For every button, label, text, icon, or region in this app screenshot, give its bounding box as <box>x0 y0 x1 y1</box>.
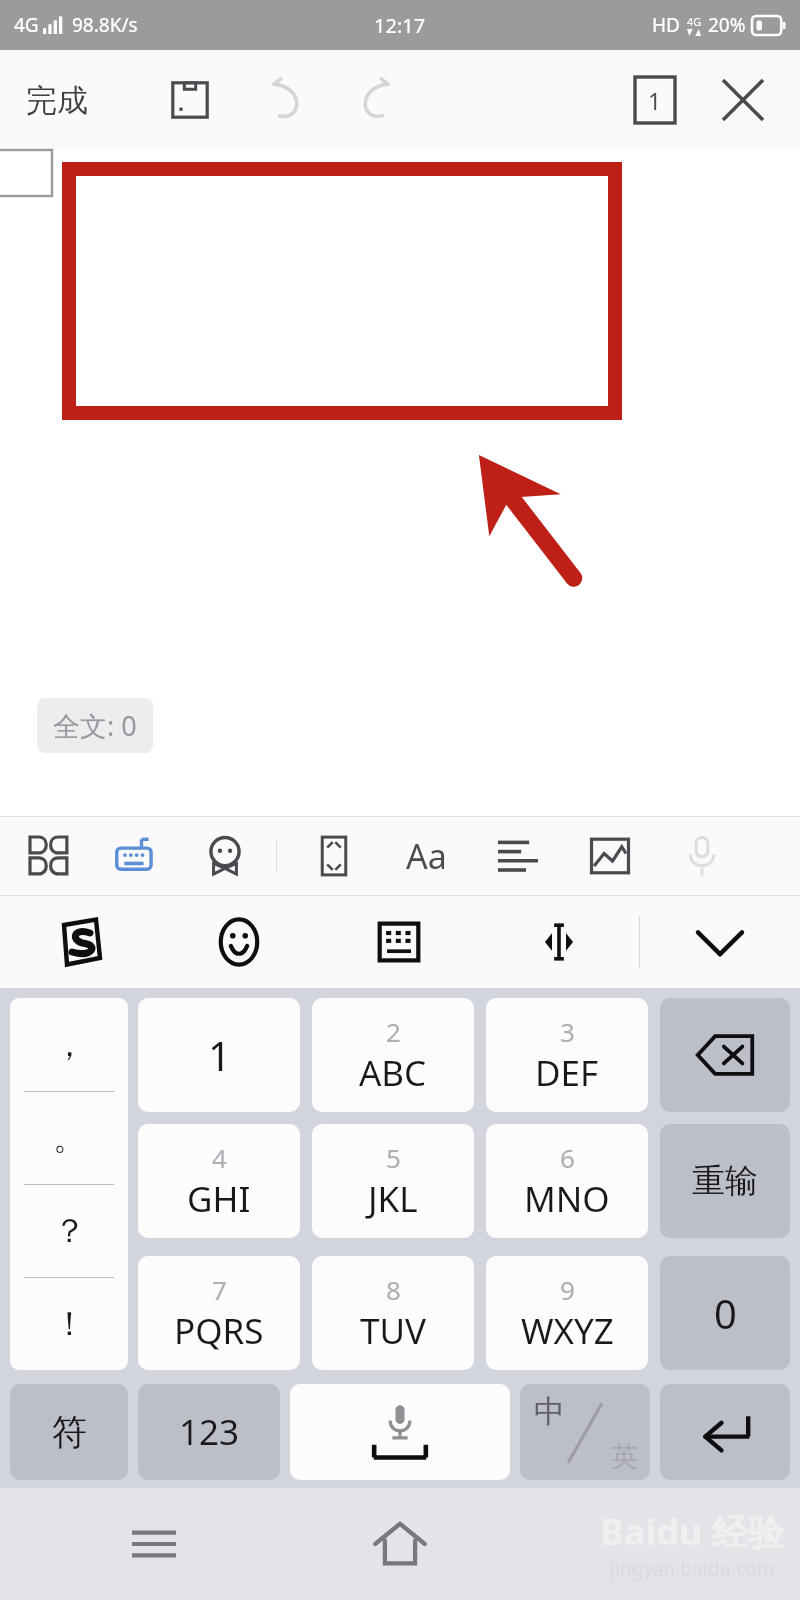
staticText: 符 <box>52 1410 87 1454</box>
button[interactable]: Backspace <box>660 998 790 1112</box>
button[interactable]: Home <box>359 1503 441 1585</box>
staticText: 3 <box>560 1014 575 1049</box>
button[interactable]: 1 <box>138 998 300 1112</box>
button[interactable]: Keyboard layout <box>319 896 479 988</box>
button[interactable]: Move cursor <box>479 896 639 988</box>
staticText: 重输 <box>692 1160 758 1202</box>
staticText: 20% <box>708 12 746 38</box>
button[interactable]: Aa <box>397 827 455 885</box>
staticText: ABC <box>359 1049 427 1097</box>
staticText: 9 <box>560 1272 575 1307</box>
staticText: 英 <box>611 1440 638 1474</box>
button[interactable]: Sticker <box>196 827 254 885</box>
staticText: JKL <box>368 1175 418 1223</box>
staticText: 4 <box>212 1140 227 1175</box>
button[interactable]: 全文: 0 <box>37 698 153 753</box>
button[interactable]: Enter <box>660 1384 790 1480</box>
button[interactable]: Recent apps <box>118 1508 190 1580</box>
staticText: 7 <box>212 1272 227 1307</box>
button[interactable]: 8 <box>312 1256 474 1370</box>
button[interactable]: Align <box>489 827 547 885</box>
staticText: GHI <box>187 1175 251 1223</box>
button[interactable]: Hide keyboard <box>640 896 800 988</box>
staticText: 98.8K/s <box>72 12 138 38</box>
button[interactable]: 3 <box>486 998 648 1112</box>
staticText: 2 <box>386 1014 401 1049</box>
staticText: 8 <box>386 1272 401 1307</box>
staticText: 5 <box>386 1140 401 1175</box>
staticText: HD <box>652 12 680 38</box>
staticText: PQRS <box>174 1307 264 1355</box>
staticText: 12:17 <box>374 12 426 39</box>
button[interactable]: 符 <box>10 1384 128 1480</box>
staticText: 中 <box>534 1392 565 1431</box>
button[interactable]: Scan <box>305 827 363 885</box>
button[interactable]: Emoji <box>159 896 319 988</box>
staticText: TUV <box>360 1307 427 1355</box>
button[interactable]: Sogou input <box>0 896 159 988</box>
button[interactable]: 7 <box>138 1256 300 1370</box>
button[interactable]: Voice input <box>673 827 731 885</box>
button[interactable]: Chinese English toggle <box>520 1384 650 1480</box>
staticText: jingyan.baidu.com <box>610 1556 775 1582</box>
staticText: 1 <box>648 85 662 116</box>
staticText: Baidu 经验 <box>600 1507 784 1556</box>
staticText: 4G <box>687 14 702 29</box>
button[interactable]: Pages <box>624 69 686 131</box>
staticText: 6 <box>560 1140 575 1175</box>
staticText: 4G <box>14 12 39 38</box>
button[interactable]: 6 <box>486 1124 648 1238</box>
staticText: MNO <box>524 1175 610 1223</box>
staticText: 0 <box>714 1286 737 1340</box>
staticText: ？ <box>53 1210 86 1252</box>
staticText: ！ <box>53 1303 86 1345</box>
button[interactable]: 2 <box>312 998 474 1112</box>
staticText: 全文: 0 <box>53 707 137 744</box>
staticText: 123 <box>179 1408 240 1456</box>
button[interactable]: ， <box>10 998 128 1370</box>
button[interactable]: Insert image <box>581 827 639 885</box>
staticText: Aa <box>406 833 447 879</box>
staticText: ， <box>53 1024 86 1066</box>
button[interactable]: 5 <box>312 1124 474 1238</box>
button[interactable]: 完成 <box>16 71 98 130</box>
button[interactable]: Redo <box>346 68 410 132</box>
button[interactable]: 123 <box>138 1384 280 1480</box>
button[interactable]: 9 <box>486 1256 648 1370</box>
staticText: 完成 <box>26 81 88 120</box>
button[interactable]: Keyboard <box>108 827 166 885</box>
button[interactable]: Close <box>712 69 774 131</box>
button[interactable]: Space and voice input <box>290 1384 510 1480</box>
staticText: 1 <box>208 1028 231 1082</box>
staticText: 。 <box>53 1117 86 1159</box>
staticText: WXYZ <box>521 1307 614 1355</box>
button[interactable]: 重输 <box>660 1124 790 1238</box>
button[interactable]: Save <box>158 68 222 132</box>
button[interactable]: Apps <box>20 827 78 885</box>
button[interactable]: 0 <box>660 1256 790 1370</box>
staticText: DEF <box>535 1049 599 1097</box>
button[interactable]: 4 <box>138 1124 300 1238</box>
button[interactable]: Undo <box>252 68 316 132</box>
